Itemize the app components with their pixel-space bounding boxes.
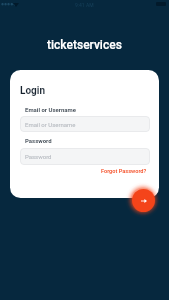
staticText: Login <box>20 85 46 97</box>
staticText: ●●●●● <box>1 2 17 6</box>
staticText: Email or Username <box>25 106 77 113</box>
staticText: ticketservices <box>47 38 122 52</box>
staticText: Email or Username <box>25 121 76 128</box>
staticText: Password <box>25 153 52 160</box>
staticText: 9:41 AM <box>75 2 94 8</box>
button[interactable]: Submit login <box>132 189 155 212</box>
button[interactable]: Password <box>20 148 150 165</box>
button[interactable]: Forgot Password? <box>101 168 147 175</box>
staticText: Password <box>25 137 52 144</box>
button[interactable]: Email or Username <box>20 116 150 132</box>
